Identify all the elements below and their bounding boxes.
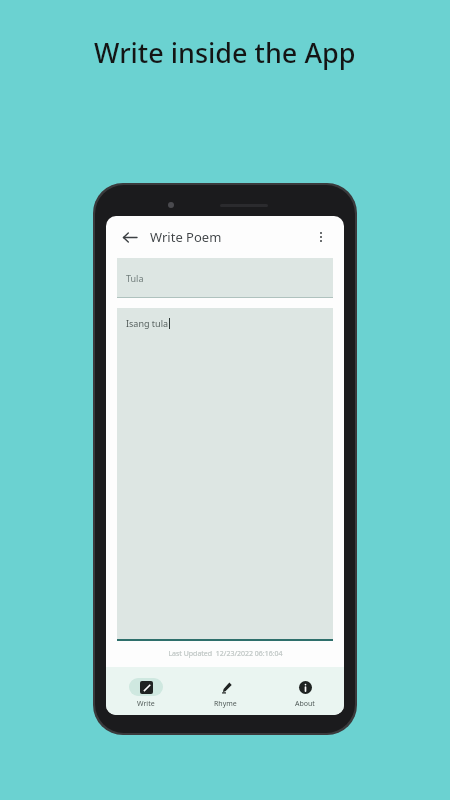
- button[interactable]: Write: [106, 674, 186, 709]
- button[interactable]: Rhyme: [186, 674, 265, 709]
- staticText: Rhyme: [214, 699, 237, 709]
- button[interactable]: Back: [116, 224, 142, 250]
- staticText: Isang tula: [126, 317, 169, 329]
- button[interactable]: More options: [308, 224, 334, 250]
- staticText: Last Updated 12/23/2022 06:16:04: [168, 649, 283, 659]
- button[interactable]: Tula: [117, 258, 333, 298]
- button[interactable]: About: [265, 674, 344, 709]
- button[interactable]: Isang tula: [117, 308, 333, 641]
- staticText: About: [295, 699, 315, 709]
- staticText: Write: [137, 699, 155, 709]
- staticText: Write Poem: [150, 228, 222, 246]
- staticText: Write inside the App: [94, 34, 356, 71]
- staticText: Tula: [126, 272, 144, 284]
